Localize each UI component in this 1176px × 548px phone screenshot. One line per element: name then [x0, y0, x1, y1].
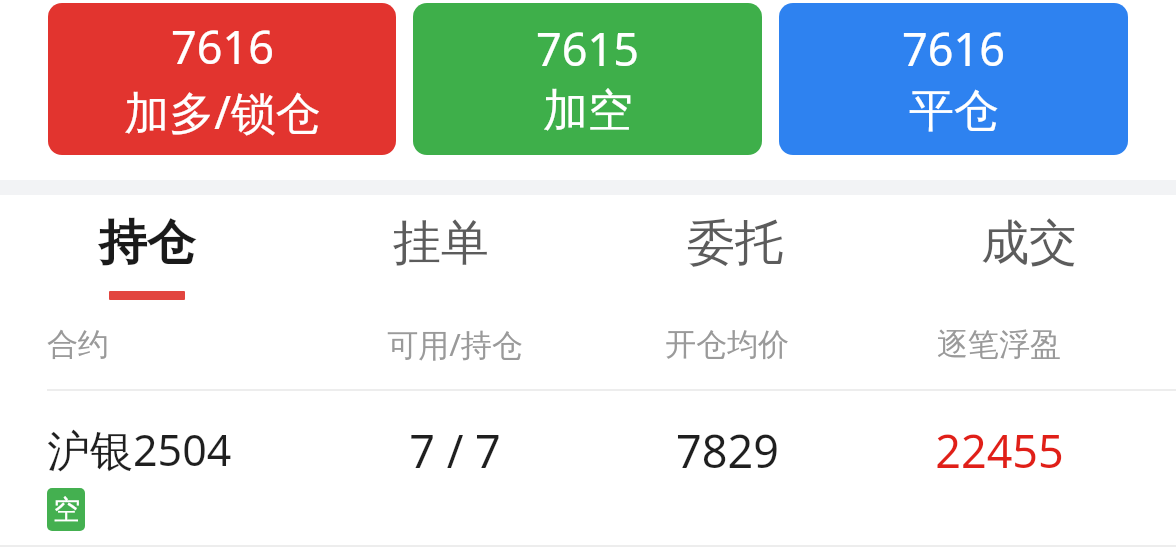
staticText: 委托	[687, 213, 783, 273]
staticText: 加空	[543, 83, 633, 140]
button[interactable]: 成交	[882, 195, 1176, 389]
staticText: 7 / 7	[409, 420, 501, 481]
staticText: 7615	[536, 18, 639, 79]
staticText: 开仓均价	[665, 325, 789, 364]
staticText: 7616	[902, 18, 1005, 79]
staticText: 空	[53, 493, 80, 527]
staticText: 22455	[935, 420, 1064, 481]
staticText: 加多/锁仓	[124, 81, 321, 142]
button[interactable]: 挂单	[294, 195, 588, 389]
button[interactable]: 7616	[779, 3, 1128, 155]
staticText: 沪银2504	[47, 420, 232, 479]
button[interactable]: 委托	[588, 195, 882, 389]
button[interactable]: 持仓	[0, 195, 294, 389]
staticText: 7829	[676, 420, 779, 481]
staticText: 7616	[171, 16, 274, 77]
staticText: 成交	[981, 213, 1077, 273]
button[interactable]: 7616	[48, 3, 396, 155]
staticText: 合约	[47, 325, 109, 364]
staticText: 逐笔浮盈	[937, 325, 1061, 364]
staticText: 持仓	[99, 213, 195, 273]
staticText: 可用/持仓	[387, 323, 523, 365]
button[interactable]: 沪银2504	[0, 392, 1176, 545]
staticText: 挂单	[393, 213, 489, 273]
button[interactable]: 7615	[413, 3, 762, 155]
staticText: 平仓	[909, 83, 999, 140]
